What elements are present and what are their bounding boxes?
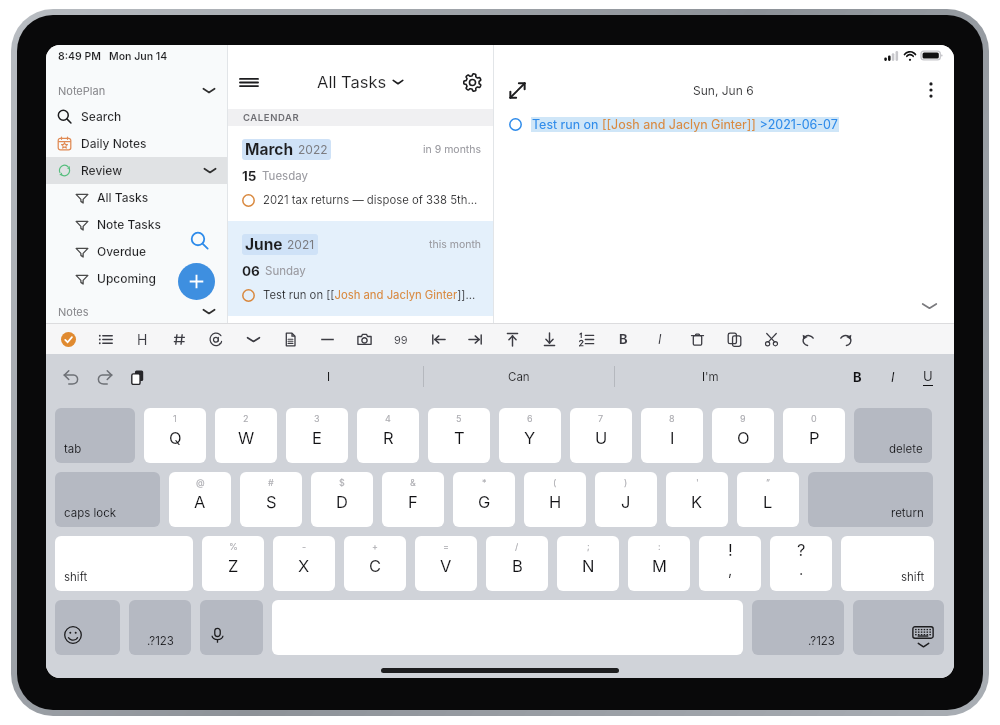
button[interactable]: U (910, 362, 945, 392)
button[interactable]: Settings (457, 67, 487, 97)
button[interactable]: Format (168, 328, 190, 350)
button[interactable]: Paste (125, 365, 149, 389)
button[interactable]: shift (55, 536, 193, 591)
staticText: Z (228, 556, 239, 576)
staticText: = (443, 541, 449, 552)
button[interactable]: Format (686, 328, 708, 350)
button[interactable]: Test run on [[Josh and Jaclyn Ginter]] >… (509, 117, 839, 132)
button[interactable]: 0 (783, 408, 845, 463)
button[interactable]: B (840, 362, 875, 392)
button[interactable]: Review (46, 157, 227, 184)
button[interactable]: Menu (234, 67, 264, 97)
button[interactable]: 1 (144, 408, 206, 463)
button[interactable]: + (344, 536, 406, 591)
button[interactable]: 2 (215, 408, 277, 463)
button[interactable]: delete (854, 408, 932, 463)
button[interactable]: .?123 (129, 600, 191, 655)
button[interactable]: Format (205, 328, 227, 350)
button[interactable]: ! (699, 536, 761, 591)
button[interactable]: $ (311, 472, 373, 527)
button[interactable]: 6 (499, 408, 561, 463)
button[interactable]: % (202, 536, 264, 591)
button[interactable]: More options (916, 75, 946, 105)
staticText: CALENDAR (243, 112, 300, 123)
button[interactable]: = (415, 536, 477, 591)
button[interactable]: Format (427, 328, 449, 350)
button[interactable]: ? (770, 536, 832, 591)
button[interactable]: Format (538, 328, 560, 350)
button[interactable]: Expand (502, 75, 532, 105)
staticText: 3 (314, 413, 320, 424)
staticText: B (512, 556, 523, 576)
button[interactable]: Format (242, 328, 264, 350)
button[interactable]: Search (186, 227, 212, 253)
button[interactable]: B (612, 328, 634, 350)
button[interactable]: Upcoming (46, 265, 227, 292)
button[interactable]: Format (575, 328, 597, 350)
button[interactable]: .?123 (752, 600, 844, 655)
staticText: Review (81, 163, 123, 178)
button[interactable]: 9 (712, 408, 774, 463)
button[interactable]: Format (316, 328, 338, 350)
button[interactable]: # (240, 472, 302, 527)
button[interactable]: & (382, 472, 444, 527)
button[interactable]: H (131, 328, 153, 350)
button[interactable]: Add (178, 263, 215, 300)
button[interactable]: Format (279, 328, 301, 350)
button[interactable]: Format (723, 328, 745, 350)
button[interactable]: Format (501, 328, 523, 350)
button[interactable]: Daily Notes (46, 130, 227, 157)
button[interactable]: Hide keyboard (853, 600, 944, 655)
button[interactable]: 3 (286, 408, 348, 463)
button[interactable]: Format (797, 328, 819, 350)
button[interactable]: I (649, 328, 671, 350)
button[interactable]: Collapse (918, 295, 940, 317)
button[interactable]: 7 (570, 408, 632, 463)
staticText: 06 (242, 263, 260, 279)
button[interactable]: March (228, 126, 493, 221)
button[interactable]: Undo (59, 365, 83, 389)
button[interactable]: 8 (641, 408, 703, 463)
button[interactable]: : (628, 536, 690, 591)
button[interactable]: Note Tasks (46, 211, 227, 238)
button[interactable]: ( (524, 472, 586, 527)
button[interactable]: 5 (428, 408, 490, 463)
button[interactable]: ' (666, 472, 728, 527)
button[interactable]: Overdue (46, 238, 227, 265)
staticText: 0 (811, 413, 817, 424)
button[interactable]: Format (834, 328, 856, 350)
button[interactable]: Search (46, 103, 227, 130)
button[interactable]: shift (841, 536, 934, 591)
button[interactable]: Format (94, 328, 116, 350)
button[interactable]: I (875, 362, 910, 392)
button[interactable]: ; (557, 536, 619, 591)
button[interactable]: Format (57, 328, 79, 350)
button[interactable]: ” (737, 472, 799, 527)
staticText: 6 (527, 413, 533, 424)
staticText: V (440, 556, 452, 576)
button[interactable]: return (808, 472, 933, 527)
staticText: S (266, 492, 277, 512)
button[interactable]: @ (169, 472, 231, 527)
button[interactable]: * (453, 472, 515, 527)
button[interactable]: All Tasks (311, 68, 410, 96)
button[interactable]: ) (595, 472, 657, 527)
staticText: ! (728, 540, 733, 560)
button[interactable]: Emoji (55, 600, 120, 655)
button[interactable]: Redo (92, 365, 116, 389)
button[interactable]: caps lock (55, 472, 160, 527)
button[interactable]: Format (760, 328, 782, 350)
button[interactable]: 4 (357, 408, 419, 463)
button[interactable]: All Tasks (46, 184, 227, 211)
button[interactable]: - (273, 536, 335, 591)
button[interactable]: NotePlan (46, 78, 227, 103)
button[interactable]: Notes (46, 300, 227, 323)
button[interactable]: Format (353, 328, 375, 350)
button[interactable]: June (228, 221, 493, 316)
button[interactable]: tab (55, 408, 135, 463)
button[interactable]: Format (464, 328, 486, 350)
button[interactable]: Dictate (200, 600, 263, 655)
button[interactable]: / (486, 536, 548, 591)
button[interactable]: 99 (390, 328, 412, 350)
